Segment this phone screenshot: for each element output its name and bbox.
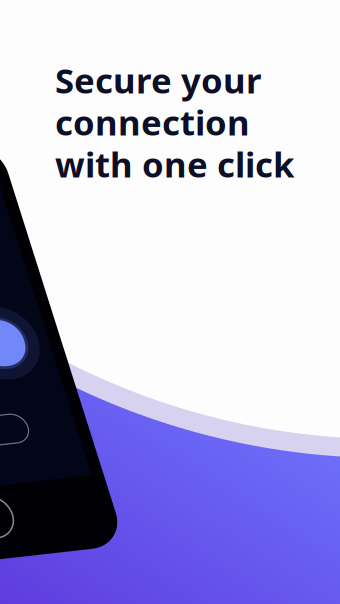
staticText: connection [55,99,250,145]
staticText: Secure your [55,57,261,103]
staticText: with one click [55,141,294,187]
